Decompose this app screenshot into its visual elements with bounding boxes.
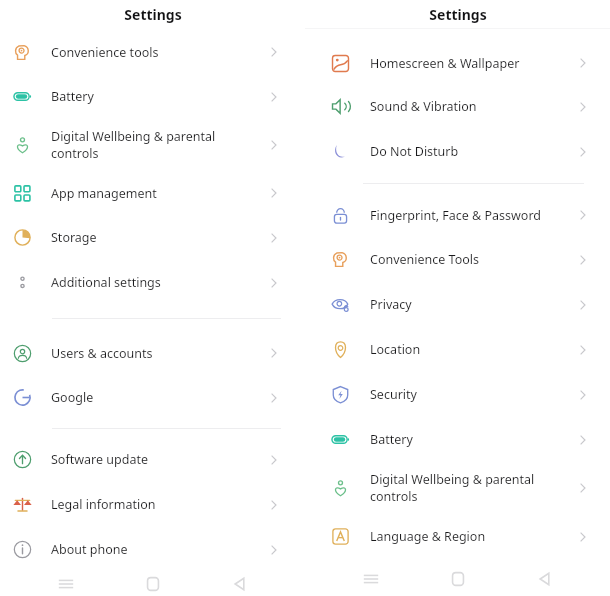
staticText: Legal information [51,496,261,513]
staticText: About phone [51,541,261,558]
button[interactable]: About phone [0,527,305,572]
button[interactable]: Fingerprint, Face & Password [305,193,610,237]
button[interactable]: Storage [0,215,305,260]
button[interactable]: Convenience tools [0,30,305,74]
staticText: Convenience tools [51,44,261,61]
staticText: Users & accounts [51,345,261,362]
button[interactable]: Security [305,372,610,417]
button[interactable]: Language & Region [305,514,610,559]
button[interactable]: Recent apps [45,572,87,596]
button[interactable]: Digital Wellbeing & parental controls [0,119,305,171]
staticText: Settings [429,5,487,24]
button[interactable]: Google [0,375,305,420]
staticText: Software update [51,451,261,468]
staticText: Battery [370,431,570,448]
button[interactable]: Battery [305,417,610,462]
staticText: Language & Region [370,528,570,545]
staticText: Do Not Disturb [370,143,570,160]
button[interactable]: Software update [0,437,305,482]
staticText: Storage [51,229,261,246]
staticText: Additional settings [51,274,261,291]
staticText: Digital Wellbeing & parental controls [370,471,570,505]
staticText: App management [51,185,261,202]
staticText: Security [370,386,570,403]
button[interactable]: Back [523,562,565,596]
button[interactable]: Convenience Tools [305,237,610,282]
staticText: Location [370,341,570,358]
button[interactable]: Home [132,572,174,596]
staticText: Homescreen & Wallpaper [370,55,570,72]
button[interactable]: Legal information [0,482,305,527]
staticText: Sound & Vibration [370,98,570,115]
staticText: Convenience Tools [370,251,570,268]
button[interactable]: Additional settings [0,260,305,305]
staticText: Digital Wellbeing & parental controls [51,128,261,162]
button[interactable]: Digital Wellbeing & parental controls [305,462,610,514]
staticText: Settings [124,5,182,24]
button[interactable]: Homescreen & Wallpaper [305,42,610,84]
button[interactable]: Sound & Vibration [305,84,610,129]
button[interactable]: Recent apps [350,562,392,596]
staticText: Privacy [370,296,570,313]
button[interactable]: Battery [0,74,305,119]
staticText: Fingerprint, Face & Password [370,207,570,224]
button[interactable]: App management [0,171,305,215]
button[interactable]: Back [218,572,260,596]
staticText: Google [51,389,261,406]
button[interactable]: Home [437,562,479,596]
staticText: Battery [51,88,261,105]
button[interactable]: Do Not Disturb [305,129,610,174]
button[interactable]: Users & accounts [0,331,305,375]
button[interactable]: Privacy [305,282,610,327]
button[interactable]: Location [305,327,610,372]
